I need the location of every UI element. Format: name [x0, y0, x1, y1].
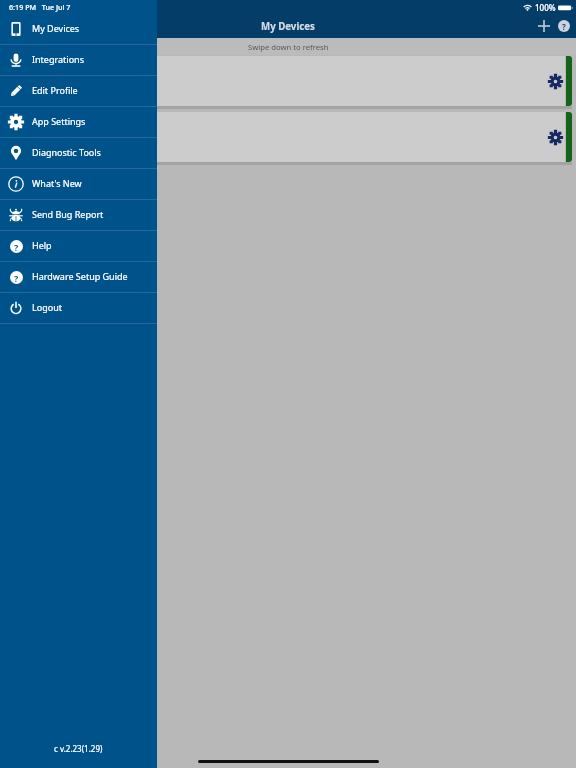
button[interactable]: Logout	[0, 293, 157, 323]
staticText: ?	[14, 272, 19, 284]
staticText: 6:19 PM Tue Jul 7	[9, 2, 71, 12]
staticText: Help	[32, 239, 52, 251]
button[interactable]: Device settings	[0, 56, 576, 108]
button[interactable]: Device settings	[0, 112, 576, 164]
button[interactable]: Add device	[534, 16, 554, 36]
staticText: My Devices	[32, 22, 80, 34]
button[interactable]: Integrations	[0, 45, 157, 75]
staticText: ?	[562, 21, 566, 32]
button[interactable]: Help	[554, 16, 574, 36]
staticText: Integrations	[32, 53, 84, 65]
button[interactable]: Send Bug Report	[0, 200, 157, 230]
staticText: Edit Profile	[32, 84, 78, 96]
button[interactable]: Edit Profile	[0, 76, 157, 106]
staticText: Hardware Setup Guide	[32, 270, 128, 282]
staticText: Send Bug Report	[32, 208, 104, 220]
staticText: 100%	[535, 2, 556, 13]
staticText: c v.2.23(1.29)	[54, 743, 103, 754]
button[interactable]: My Devices	[0, 14, 157, 44]
staticText: Swipe down to refresh	[248, 42, 329, 52]
button[interactable]: App Settings	[0, 107, 157, 137]
button[interactable]: Device settings	[542, 68, 568, 94]
staticText: What's New	[32, 177, 82, 189]
staticText: Diagnostic Tools	[32, 146, 101, 158]
staticText: ?	[14, 241, 19, 253]
staticText: Logout	[32, 301, 62, 313]
button[interactable]: Device settings	[542, 124, 568, 150]
staticText: My Devices	[261, 20, 315, 33]
button[interactable]: ?	[0, 262, 157, 292]
button[interactable]: What's New	[0, 169, 157, 199]
staticText: App Settings	[32, 115, 86, 127]
button[interactable]: Diagnostic Tools	[0, 138, 157, 168]
button[interactable]: ?	[0, 231, 157, 261]
